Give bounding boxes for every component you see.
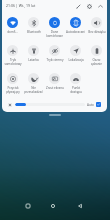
button[interactable]: Edit: [74, 2, 83, 11]
staticText: Latarka: [28, 58, 39, 62]
staticText: Nie przeszkadzać: [24, 86, 43, 94]
staticText: Bez dźwięku: [88, 30, 106, 34]
staticText: Przycisk pływający: [6, 86, 20, 94]
button[interactable]: Brightness: [15, 103, 85, 106]
staticText: Autoobracani: [66, 30, 85, 34]
button[interactable]: Settings: [85, 2, 94, 11]
button[interactable]: Bez dźwięku: [86, 17, 107, 45]
button[interactable]: Tryb ciemny: [44, 45, 65, 73]
button[interactable]: Zrzut ekranu: [44, 73, 65, 101]
button[interactable]: Tryb samolotowy: [2, 45, 23, 73]
staticText: Punkt dostępu: [70, 86, 82, 94]
button[interactable]: Home: [44, 197, 62, 215]
staticText: Auto: [87, 103, 94, 107]
button[interactable]: domS...: [2, 17, 23, 45]
button[interactable]: Dane komórkowe: [44, 17, 65, 45]
staticText: Bluetooth: [27, 30, 41, 34]
staticText: Zrzut ekranu: [46, 86, 64, 90]
staticText: domS...: [7, 30, 18, 34]
button[interactable]: Bluetooth: [23, 17, 44, 45]
button[interactable]: Recent apps: [19, 197, 37, 215]
button[interactable]: Power menu: [96, 2, 105, 11]
button[interactable]: Przycisk pływający: [2, 73, 23, 101]
button[interactable]: Lokalizacja: [65, 45, 86, 73]
button[interactable]: Punkt dostępu: [65, 73, 86, 101]
button[interactable]: Auto brightness: [96, 102, 101, 107]
button[interactable]: Latarka: [23, 45, 44, 73]
button[interactable]: Autoobracani: [65, 17, 86, 45]
staticText: Oszcz ędzanie: [91, 58, 102, 66]
button[interactable]: Oszcz ędzanie: [86, 45, 107, 73]
staticText: Tryb samolotowy: [4, 58, 22, 66]
button[interactable]: Nie przeszkadzać: [23, 73, 44, 101]
staticText: Dane komórkowe: [46, 30, 63, 38]
staticText: Tryb ciemny: [46, 58, 64, 62]
staticText: 21:06 | Wt., 19 lut: [6, 3, 36, 8]
button[interactable]: Back: [71, 197, 89, 215]
staticText: Lokalizacja: [68, 58, 84, 62]
